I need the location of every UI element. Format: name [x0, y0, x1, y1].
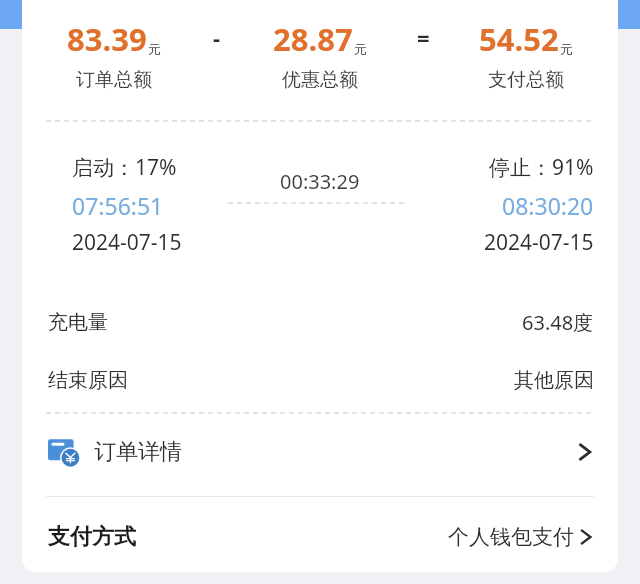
staticText: 83.39 — [67, 18, 147, 60]
staticText: 个人钱包支付 — [448, 524, 574, 550]
button[interactable]: 结束原因 — [22, 358, 618, 402]
staticText: 2024-07-15 — [72, 228, 182, 257]
staticText: 2024-07-15 — [484, 228, 594, 257]
staticText: 支付总额 — [488, 68, 564, 92]
staticText: 28.87 — [273, 18, 353, 60]
button[interactable]: 充电量 — [22, 300, 618, 344]
staticText: 充电量 — [48, 310, 108, 335]
staticText: 订单详情 — [94, 438, 182, 466]
staticText: - — [213, 22, 221, 52]
staticText: 元 — [354, 41, 367, 57]
staticText: = — [417, 22, 430, 52]
staticText: 其他原因 — [514, 368, 594, 393]
button[interactable]: 支付方式 — [22, 512, 618, 562]
staticText: 00:33:29 — [280, 168, 360, 195]
staticText: 订单总额 — [76, 68, 152, 92]
staticText: 元 — [560, 41, 573, 57]
staticText: 支付方式 — [48, 523, 136, 551]
staticText: 07:56:51 — [72, 190, 164, 221]
button[interactable]: 订单详情 — [22, 427, 618, 477]
staticText: 元 — [148, 41, 161, 57]
staticText: 08:30:20 — [502, 190, 594, 221]
staticText: 优惠总额 — [282, 68, 358, 92]
staticText: 54.52 — [479, 18, 559, 60]
staticText: 63.48度 — [522, 309, 594, 336]
staticText: 结束原因 — [48, 368, 128, 393]
staticText: 启动：17% — [72, 153, 177, 182]
staticText: 停止：91% — [489, 153, 594, 182]
